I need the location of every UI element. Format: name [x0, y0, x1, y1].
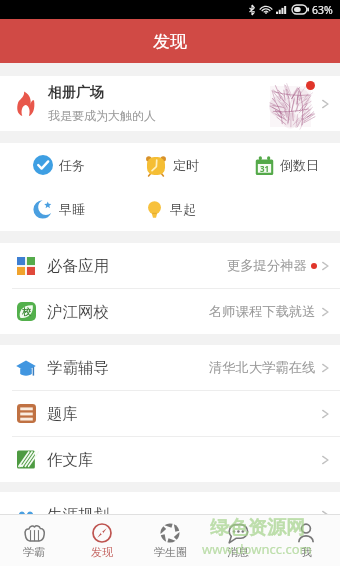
staticText: 发现 [91, 545, 113, 559]
staticText: 学生圈 [154, 545, 187, 559]
staticText: 绿色资源网 [210, 516, 305, 540]
button[interactable]: 任务 [0, 143, 145, 187]
staticText: 学霸 [23, 545, 45, 559]
staticText: 题库 [47, 404, 78, 424]
button[interactable]: 早起 [145, 187, 255, 231]
staticText: 学霸辅导 [47, 358, 109, 378]
staticText: 任务 [59, 157, 85, 173]
staticText: 早睡 [59, 201, 85, 217]
button[interactable]: 消息 [204, 515, 272, 566]
staticText: 作文库 [47, 450, 94, 470]
button[interactable]: 相册广场 [0, 76, 340, 131]
staticText: 更多提分神器 [227, 257, 307, 274]
staticText: 我 [301, 545, 312, 559]
button[interactable]: 我 [272, 515, 340, 566]
staticText: 相册广场 [48, 84, 104, 102]
button[interactable]: 生涯规划 [0, 492, 340, 514]
staticText: 31 [260, 163, 270, 174]
staticText: www.downcc.com [202, 540, 312, 558]
button[interactable]: 发现 [68, 515, 136, 566]
button[interactable]: 必备应用 [0, 243, 340, 288]
button[interactable]: 题库 [0, 391, 340, 436]
button[interactable]: 学霸 [0, 515, 68, 566]
staticText: 生涯规划 [47, 505, 109, 514]
button[interactable]: 学生圈 [136, 515, 204, 566]
button[interactable]: 早睡 [0, 187, 145, 231]
staticText: 倒数日 [280, 157, 319, 173]
staticText: 早起 [170, 201, 196, 217]
staticText: 63% [312, 3, 333, 17]
button[interactable]: 31 [255, 143, 340, 187]
staticText: 我是要成为大触的人 [48, 108, 156, 123]
button[interactable]: 定时 [145, 143, 255, 187]
staticText: 发现 [153, 31, 187, 52]
staticText: 消息 [227, 545, 249, 559]
staticText: 定时 [173, 157, 199, 173]
staticText: 清华北大学霸在线 [209, 359, 316, 376]
staticText: 名师课程下载就送 [209, 303, 316, 320]
staticText: 沪江网校 [47, 302, 109, 322]
button[interactable]: 学霸辅导 [0, 345, 340, 390]
staticText: 必备应用 [47, 256, 109, 276]
staticText: 校 [22, 306, 31, 317]
button[interactable]: 作文库 [0, 437, 340, 482]
button[interactable]: 校 [0, 289, 340, 334]
